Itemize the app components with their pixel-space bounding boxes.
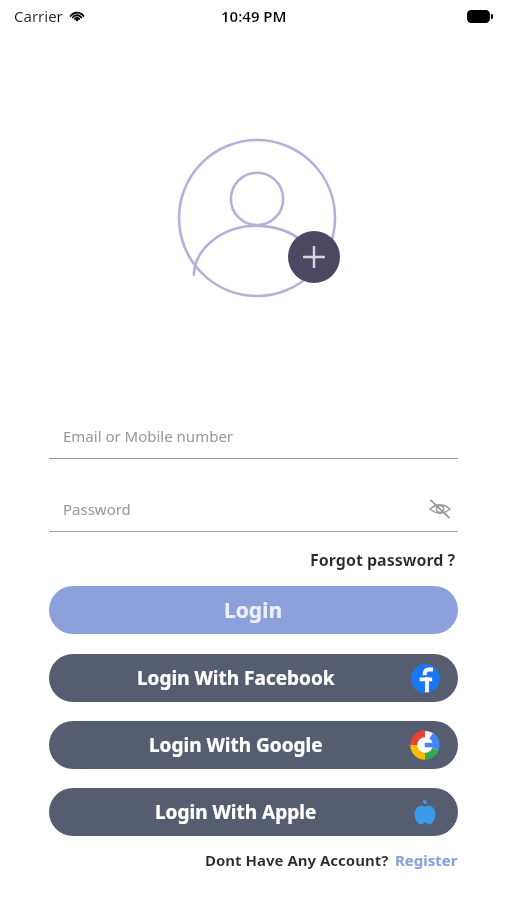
staticText: Login: [224, 596, 283, 625]
staticText: Register: [395, 850, 458, 870]
staticText: Login With Google: [149, 732, 323, 758]
staticText: Dont Have Any Account?: [205, 850, 389, 870]
staticText: Carrier: [14, 6, 63, 26]
button[interactable]: Email or Mobile number: [49, 414, 458, 458]
button[interactable]: Add photo: [288, 231, 340, 283]
button[interactable]: Register: [389, 850, 458, 870]
button[interactable]: Login With Apple: [49, 788, 458, 836]
staticText: Password: [63, 499, 131, 519]
staticText: Login With Facebook: [137, 665, 335, 691]
button[interactable]: Add profile photo: [176, 138, 338, 298]
staticText: Login With Apple: [155, 799, 317, 825]
button[interactable]: Forgot password ?: [308, 546, 458, 574]
button[interactable]: Password: [49, 487, 458, 531]
staticText: Email or Mobile number: [63, 426, 234, 446]
staticText: 10:49 PM: [221, 6, 287, 26]
button[interactable]: Login With Google: [49, 721, 458, 769]
staticText: Forgot password ?: [310, 549, 456, 571]
button[interactable]: Login: [49, 586, 458, 634]
button[interactable]: Login With Facebook: [49, 654, 458, 702]
button[interactable]: Show password: [422, 491, 458, 527]
